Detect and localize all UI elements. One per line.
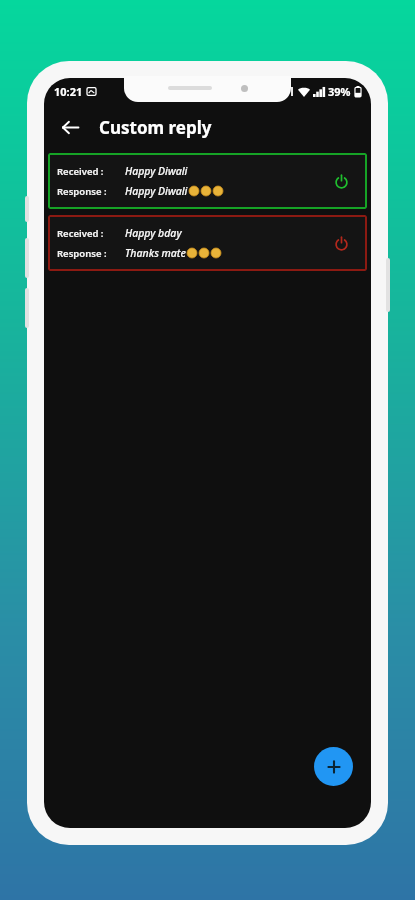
staticText: Happy bday [125,226,182,240]
staticText: Received : [57,227,104,240]
staticText: Happy Diwali [125,184,188,198]
button[interactable]: Received : [48,215,367,271]
button[interactable]: Toggle reply [326,228,356,258]
button[interactable]: Received : [48,153,367,209]
staticText: Received : [57,165,104,178]
staticText: 10:21 [54,84,83,99]
button[interactable]: Toggle reply [326,166,356,196]
staticText: Response : [57,247,107,260]
staticText: 39% [328,84,351,99]
button[interactable]: Add custom reply [314,747,353,786]
staticText: Response : [57,185,107,198]
staticText: Custom reply [99,116,212,139]
button[interactable]: Back [50,107,90,147]
staticText: Happy Diwali [125,164,188,178]
staticText: Thanks mate [125,246,186,260]
